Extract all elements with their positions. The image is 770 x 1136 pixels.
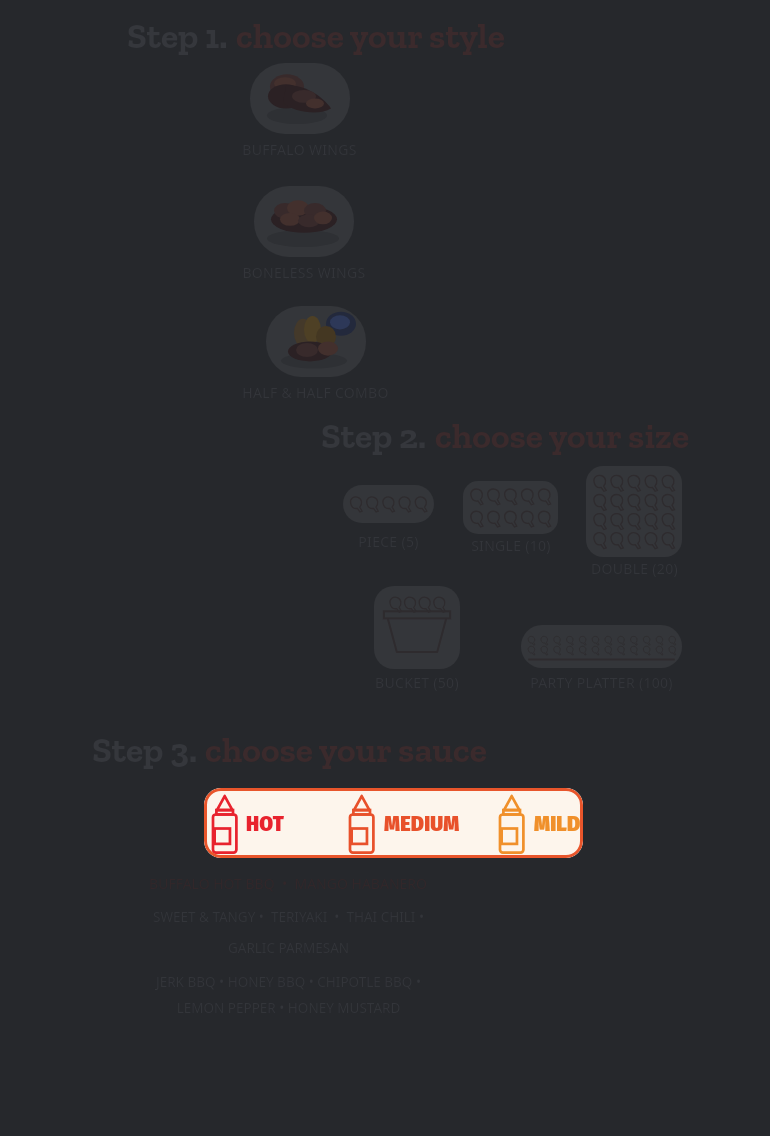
staticText: BUCKET (50): [375, 673, 459, 692]
staticText: MEDIUM: [384, 810, 460, 836]
staticText: choose your sauce: [205, 728, 487, 771]
staticText: BUFFALO WINGS: [242, 140, 357, 159]
staticText: SINGLE (10): [471, 536, 551, 555]
button[interactable]: DOUBLE (20): [586, 466, 682, 557]
staticText: HOT: [246, 810, 284, 836]
staticText: PIECE (5): [358, 532, 419, 551]
button[interactable]: PARTY PLATTER (100): [521, 625, 682, 668]
staticText: BONELESS WINGS: [242, 263, 366, 282]
staticText: PARTY PLATTER (100): [530, 673, 673, 692]
button[interactable]: SINGLE (10): [463, 481, 558, 534]
staticText: DOUBLE (20): [591, 559, 678, 578]
staticText: Step 2.: [321, 414, 427, 457]
staticText: MILD: [534, 810, 581, 836]
button[interactable]: MILD: [499, 788, 581, 858]
staticText: Step 1.: [127, 14, 228, 57]
button[interactable]: BONELESS WINGS: [254, 186, 354, 257]
staticText: BUFFALO HOT BBQ • MANGO HABANERO: [149, 874, 427, 893]
staticText: Step 3.: [92, 728, 197, 771]
button[interactable]: MEDIUM: [349, 788, 460, 858]
staticText: choose your size: [435, 414, 690, 457]
staticText: JERK BBQ • HONEY BBQ • CHIPOTLE BBQ • LE…: [156, 973, 421, 1017]
staticText: HALF & HALF COMBO: [242, 383, 389, 402]
button[interactable]: PIECE (5): [343, 485, 434, 523]
button[interactable]: HALF & HALF COMBO: [266, 306, 366, 377]
staticText: choose your style: [236, 14, 505, 57]
button[interactable]: HOT: [212, 788, 284, 858]
button[interactable]: BUFFALO WINGS: [250, 63, 350, 134]
button[interactable]: BUCKET (50): [374, 586, 460, 669]
